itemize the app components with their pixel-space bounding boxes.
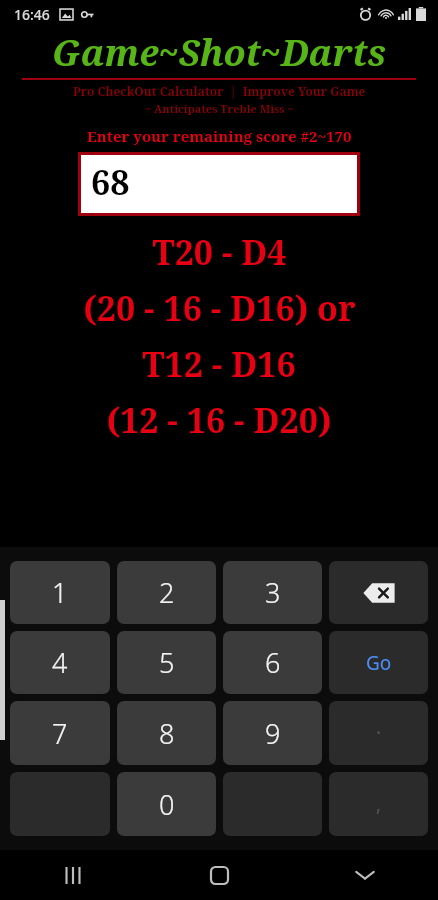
staticText: T12 - D16 — [142, 341, 296, 387]
staticText: 16:46 — [14, 5, 50, 24]
staticText: 1 — [52, 574, 68, 611]
button[interactable]: Hide keyboard — [337, 850, 393, 900]
staticText: 68 — [91, 159, 130, 205]
button[interactable]: 9 — [223, 701, 322, 765]
button[interactable]: Recents — [45, 850, 101, 900]
staticText: Game~Shot~Darts — [52, 28, 386, 77]
staticText: (20 - 16 - D16) or — [83, 285, 356, 331]
button[interactable]: 8 — [117, 701, 216, 765]
staticText: 0 — [159, 786, 175, 823]
staticText: (12 - 16 - D20) — [106, 397, 332, 443]
staticText: 5 — [159, 644, 175, 681]
staticText: Pro CheckOut Calculator | Improve Your G… — [73, 83, 366, 99]
button[interactable]: 68 — [81, 155, 357, 213]
button[interactable]: 3 — [223, 561, 322, 624]
staticText: · — [376, 720, 382, 746]
button[interactable]: Home — [191, 850, 247, 900]
button[interactable]: 1 — [10, 561, 110, 624]
button[interactable]: Go — [329, 631, 428, 694]
staticText: 2 — [159, 574, 175, 611]
staticText: 9 — [265, 715, 281, 752]
staticText: T20 - D4 — [152, 229, 287, 275]
button[interactable]: 4 — [10, 631, 110, 694]
staticText: 3 — [265, 574, 281, 611]
staticText: 4 — [52, 644, 68, 681]
button[interactable]: 0 — [117, 772, 216, 836]
button[interactable]: 6 — [223, 631, 322, 694]
button[interactable]: Backspace — [329, 561, 428, 624]
staticText: 7 — [52, 715, 68, 752]
staticText: Go — [366, 650, 392, 676]
staticText: 8 — [159, 715, 175, 752]
staticText: Enter your remaining score #2~170 — [87, 126, 352, 146]
button[interactable]: 7 — [10, 701, 110, 765]
button[interactable]: 2 — [117, 561, 216, 624]
staticText: , — [376, 791, 382, 817]
button[interactable]: 5 — [117, 631, 216, 694]
staticText: 6 — [265, 644, 281, 681]
staticText: ~ Anticipates Treble Miss ~ — [145, 101, 294, 116]
